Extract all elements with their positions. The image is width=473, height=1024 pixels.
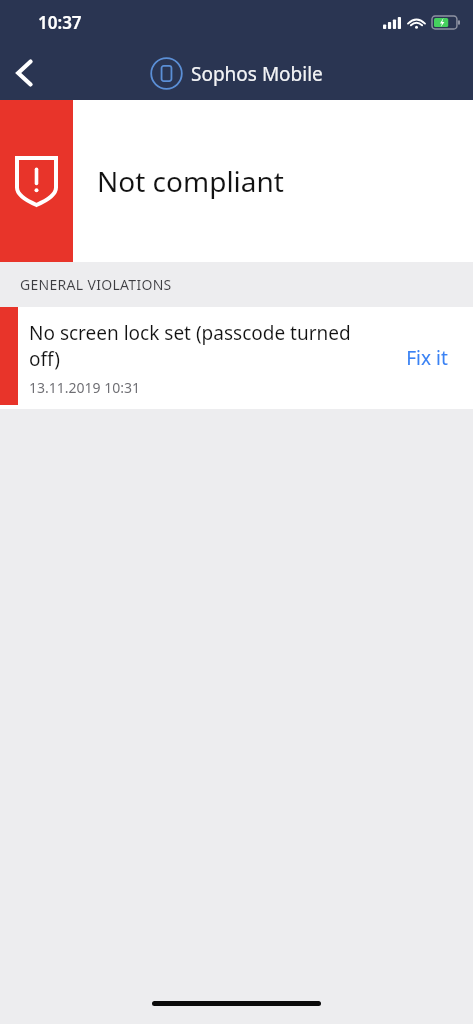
staticText: Not compliant <box>97 162 284 200</box>
button[interactable]: No screen lock set (passcode turned off) <box>0 307 473 409</box>
button[interactable]: Fix it <box>381 307 473 409</box>
button[interactable]: Back <box>0 46 50 100</box>
staticText: GENERAL VIOLATIONS <box>20 275 172 294</box>
staticText: Fix it <box>406 345 448 371</box>
staticText: No screen lock set (passcode turned off) <box>29 320 375 372</box>
staticText: Sophos Mobile <box>191 61 323 87</box>
button[interactable]: Not compliant <box>0 100 473 262</box>
staticText: 10:37 <box>38 11 82 34</box>
staticText: 13.11.2019 10:31 <box>29 378 140 397</box>
